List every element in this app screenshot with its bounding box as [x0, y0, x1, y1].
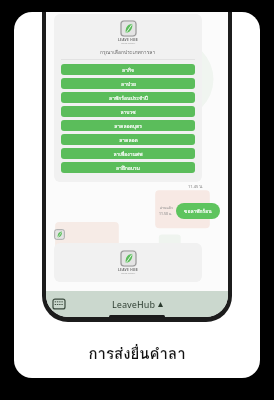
staticText: LeaveHub [112, 298, 155, 310]
button[interactable]: ลากิจ [61, 64, 195, 75]
staticText: ลาเพื่องานศพ [113, 150, 143, 158]
button[interactable]: ลาป่วย [61, 78, 195, 89]
button[interactable]: ลาบวช [61, 106, 195, 117]
staticText: อ่านแล้ว [160, 205, 173, 211]
staticText: 11.45 น. [188, 183, 204, 189]
button[interactable]: ลาคลอดบุตร [61, 120, 195, 131]
staticText: กรุณาเลือกประเภทการลา [100, 48, 156, 56]
staticText: ลาคลอดบุตร [114, 122, 142, 130]
button[interactable]: ลาคลอด [61, 134, 195, 145]
staticText: ลาฝึกอบรม [116, 164, 140, 172]
staticText: LEAVE SIMPLY [121, 272, 136, 275]
staticText: ลาพักร้อนประจำปี [109, 94, 148, 102]
button[interactable]: Keyboard [52, 297, 66, 311]
staticText: ลาบวช [120, 108, 136, 116]
button[interactable]: ลาฝึกอบรม [61, 162, 195, 173]
staticText: LEAVE SIMPLY [121, 42, 136, 45]
button[interactable]: ขอลาพักร้อน [176, 203, 220, 219]
staticText: ลาคลอด [119, 136, 138, 144]
staticText: ขอลาพักร้อน [184, 207, 212, 215]
staticText: ลากิจ [122, 66, 134, 74]
staticText: 11.50 น. [159, 211, 173, 217]
button[interactable]: ลาพักร้อนประจำปี [61, 92, 195, 103]
staticText: LEAVE HUB [118, 268, 138, 272]
staticText: LEAVE HUB [118, 38, 138, 42]
button[interactable]: ลาเพื่องานศพ [61, 148, 195, 159]
staticText: การส่งยื่นคำลา [88, 342, 186, 366]
staticText: ลาป่วย [121, 80, 136, 88]
